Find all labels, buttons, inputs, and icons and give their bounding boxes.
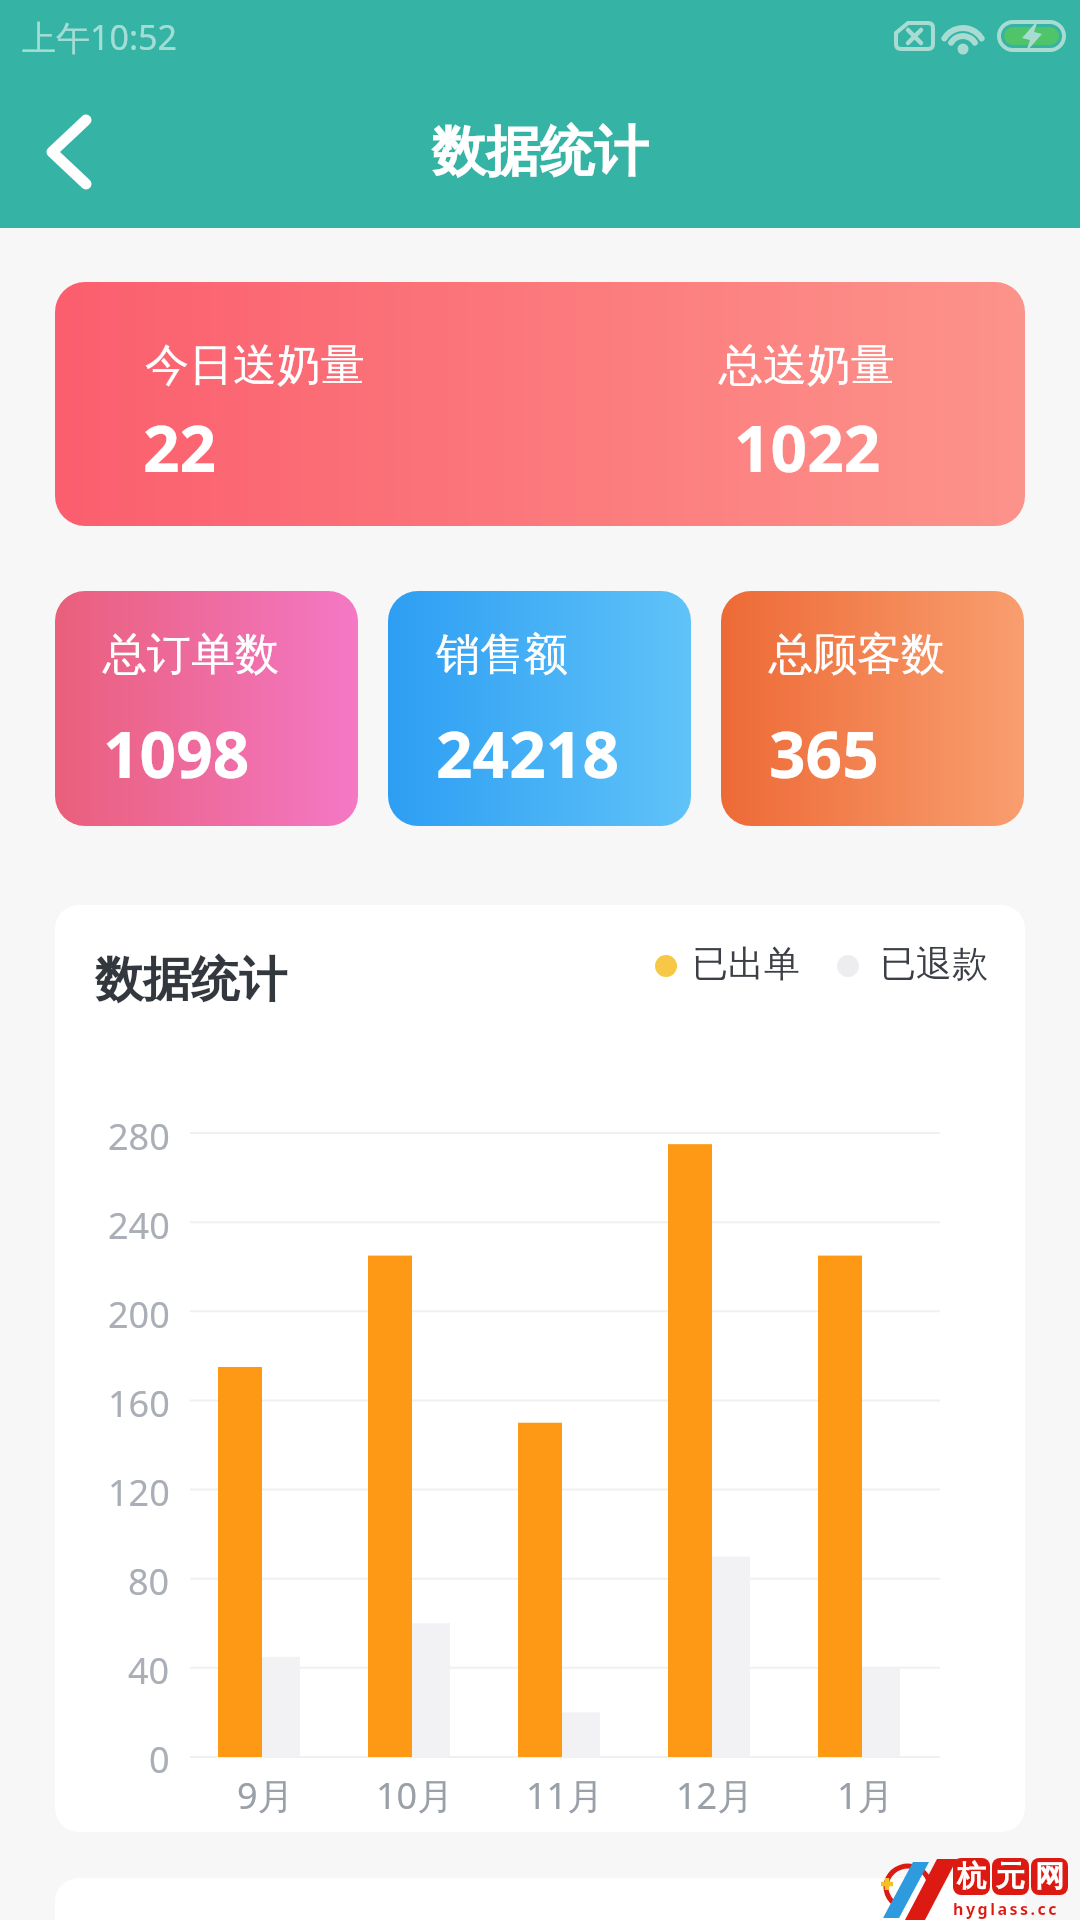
staticText: 40 bbox=[128, 1646, 170, 1690]
staticText: 网 bbox=[1035, 1858, 1064, 1895]
staticText: 元 bbox=[996, 1858, 1025, 1895]
staticText: 总订单数 bbox=[103, 627, 279, 682]
staticText: 1月 bbox=[837, 1771, 894, 1815]
staticText: 120 bbox=[108, 1468, 170, 1512]
staticText: 1098 bbox=[103, 710, 250, 797]
staticText: 280 bbox=[108, 1112, 170, 1156]
button[interactable] bbox=[20, 102, 120, 202]
staticText: 160 bbox=[108, 1379, 170, 1423]
staticText: 200 bbox=[108, 1290, 170, 1334]
staticText: 总送奶量 bbox=[719, 338, 895, 393]
staticText: 0 bbox=[149, 1735, 170, 1779]
staticText: 今日送奶量 bbox=[145, 338, 365, 393]
staticText: 365 bbox=[769, 710, 879, 797]
staticText: 11月 bbox=[526, 1771, 604, 1815]
staticText: 数据统计 bbox=[432, 118, 648, 186]
button[interactable]: 总订单数 bbox=[55, 591, 358, 826]
staticText: 80 bbox=[128, 1557, 170, 1601]
staticText: 总顾客数 bbox=[769, 627, 945, 682]
button[interactable]: 今日送奶量 bbox=[55, 282, 1025, 526]
staticText: 已出单 bbox=[692, 941, 800, 986]
staticText: 已退款 bbox=[880, 941, 988, 986]
button[interactable]: 销售额 bbox=[388, 591, 691, 826]
staticText: 上午10:52 bbox=[22, 14, 177, 60]
staticText: 数据统计 bbox=[95, 950, 287, 1010]
staticText: 杭 bbox=[957, 1858, 986, 1895]
staticText: 24218 bbox=[436, 710, 620, 797]
staticText: 销售额 bbox=[436, 627, 568, 682]
staticText: hyglass.cc bbox=[953, 1898, 1060, 1920]
button[interactable]: 总顾客数 bbox=[721, 591, 1024, 826]
staticText: 10月 bbox=[376, 1771, 454, 1815]
staticText: 1022 bbox=[734, 404, 881, 491]
staticText: 12月 bbox=[676, 1771, 754, 1815]
staticText: 240 bbox=[108, 1201, 170, 1245]
staticText: 22 bbox=[143, 404, 217, 491]
staticText: 9月 bbox=[237, 1771, 294, 1815]
